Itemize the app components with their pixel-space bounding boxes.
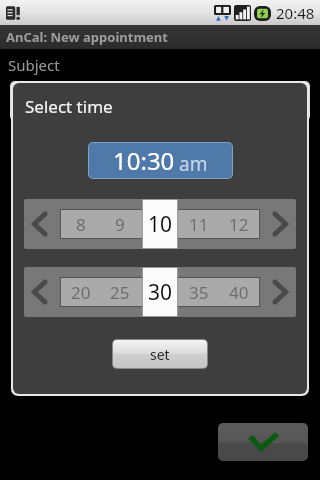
staticText: 8 bbox=[76, 213, 86, 236]
button[interactable]: Next bbox=[264, 267, 296, 317]
staticText: 40 bbox=[229, 281, 249, 304]
staticText: 10:30 bbox=[113, 144, 175, 177]
staticText: set bbox=[150, 345, 170, 364]
button[interactable]: 40 bbox=[219, 278, 259, 306]
button[interactable]: 10:30 bbox=[89, 143, 232, 178]
staticText: 9 bbox=[115, 213, 125, 236]
button[interactable]: 8 bbox=[61, 210, 100, 238]
button[interactable]: 20 bbox=[61, 278, 100, 306]
button[interactable]: set bbox=[113, 340, 207, 368]
staticText: 30 bbox=[148, 278, 173, 307]
staticText: Subject bbox=[8, 55, 60, 75]
button[interactable]: 25 bbox=[100, 278, 139, 306]
button[interactable]: 11 bbox=[179, 210, 219, 238]
button[interactable]: Previous bbox=[24, 267, 56, 317]
button[interactable]: 10 bbox=[143, 200, 177, 248]
button[interactable]: Next bbox=[264, 199, 296, 249]
staticText: 35 bbox=[189, 281, 209, 304]
staticText: 20:48 bbox=[276, 3, 315, 23]
staticText: Select time bbox=[25, 95, 113, 118]
button[interactable]: 35 bbox=[179, 278, 219, 306]
staticText: 12 bbox=[229, 213, 249, 236]
button[interactable]: 9 bbox=[100, 210, 139, 238]
staticText: 11 bbox=[189, 213, 209, 236]
staticText: am bbox=[179, 151, 208, 177]
staticText: AnCal: New appointment bbox=[6, 28, 168, 46]
staticText: 20 bbox=[71, 281, 91, 304]
button[interactable]: Confirm bbox=[218, 423, 308, 461]
button[interactable]: 30 bbox=[143, 268, 177, 316]
button[interactable]: Previous bbox=[24, 199, 56, 249]
staticText: 10 bbox=[148, 210, 173, 239]
button[interactable]: 12 bbox=[219, 210, 259, 238]
staticText: 25 bbox=[110, 281, 130, 304]
